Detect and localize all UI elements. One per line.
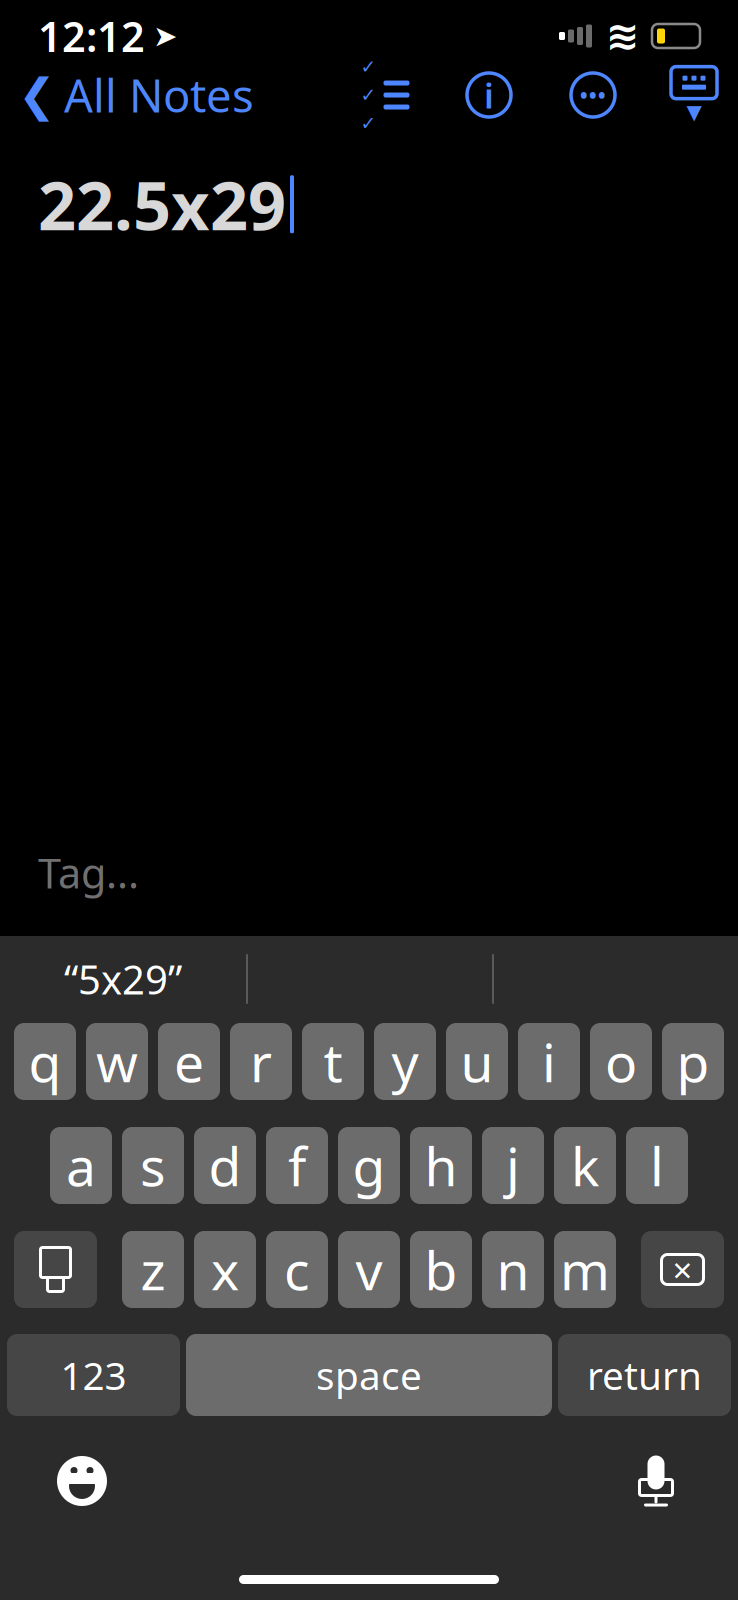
staticText: ••• <box>579 80 606 110</box>
staticText: Tag... <box>38 845 139 900</box>
staticText: s <box>140 1130 166 1201</box>
staticText: m <box>560 1234 610 1305</box>
staticText: b <box>424 1234 457 1305</box>
staticText: 12:12 <box>38 9 145 63</box>
button[interactable]: t <box>302 1023 364 1100</box>
button[interactable]: r <box>230 1023 292 1100</box>
button[interactable]: Info <box>464 70 514 120</box>
staticText: ❮ <box>18 69 56 121</box>
button[interactable]: “5x29” <box>0 936 246 1022</box>
button[interactable]: j <box>482 1127 544 1204</box>
staticText: d <box>208 1130 241 1201</box>
staticText: space <box>316 1349 422 1401</box>
staticText: w <box>96 1026 138 1097</box>
button[interactable]: Emoji <box>44 1443 120 1519</box>
button[interactable]: Checklist <box>360 73 410 117</box>
staticText: “5x29” <box>64 952 182 1005</box>
button[interactable]: Tag... <box>38 839 139 906</box>
staticText: ➤ <box>153 19 178 53</box>
staticText: q <box>28 1026 61 1097</box>
button[interactable]: n <box>482 1231 544 1308</box>
button[interactable]: l <box>626 1127 688 1204</box>
staticText: ≋ <box>606 13 640 59</box>
staticText: ✓ <box>360 113 376 134</box>
staticText: 22.5x29 <box>38 160 286 248</box>
staticText: x <box>211 1234 239 1305</box>
button[interactable]: c <box>266 1231 328 1308</box>
staticText: f <box>288 1130 306 1201</box>
button[interactable]: z <box>122 1231 184 1308</box>
button[interactable]: o <box>590 1023 652 1100</box>
button[interactable]: return <box>558 1334 731 1416</box>
staticText: j <box>506 1130 520 1201</box>
staticText: g <box>352 1130 385 1201</box>
button[interactable]: u <box>446 1023 508 1100</box>
staticText: ✓ <box>360 56 376 77</box>
button[interactable]: h <box>410 1127 472 1204</box>
button[interactable]: Shift <box>14 1231 97 1308</box>
staticText: n <box>496 1234 529 1305</box>
button[interactable]: m <box>554 1231 616 1308</box>
button[interactable]: x <box>194 1231 256 1308</box>
staticText: 123 <box>60 1349 126 1401</box>
button[interactable]: b <box>410 1231 472 1308</box>
staticText: k <box>571 1130 599 1201</box>
staticText: ✓ <box>360 84 376 106</box>
staticText: v <box>355 1234 382 1305</box>
button[interactable]: f <box>266 1127 328 1204</box>
button[interactable]: a <box>50 1127 112 1204</box>
button[interactable]: Hide Keyboard <box>668 69 720 121</box>
button[interactable]: 123 <box>7 1334 180 1416</box>
button[interactable]: d <box>194 1127 256 1204</box>
button[interactable]: i <box>518 1023 580 1100</box>
staticText: t <box>323 1026 342 1097</box>
button[interactable]: k <box>554 1127 616 1204</box>
button[interactable]: w <box>86 1023 148 1100</box>
staticText: z <box>140 1234 165 1305</box>
button[interactable]: y <box>374 1023 436 1100</box>
staticText: ▼ <box>686 101 701 123</box>
staticText: y <box>391 1026 418 1097</box>
staticText: All Notes <box>64 65 254 125</box>
button[interactable]: p <box>662 1023 724 1100</box>
button[interactable]: Delete <box>641 1231 724 1308</box>
staticText: return <box>587 1349 702 1401</box>
button[interactable]: v <box>338 1231 400 1308</box>
staticText: e <box>174 1026 204 1097</box>
staticText: p <box>676 1026 709 1097</box>
button[interactable]: Dictate <box>618 1443 694 1519</box>
button[interactable]: s <box>122 1127 184 1204</box>
button[interactable]: e <box>158 1023 220 1100</box>
button[interactable]: ❮ <box>0 59 254 131</box>
staticText: u <box>460 1026 493 1097</box>
staticText: l <box>650 1130 664 1201</box>
staticText: o <box>605 1026 637 1097</box>
staticText: c <box>284 1234 310 1305</box>
staticText: i <box>542 1026 556 1097</box>
staticText: h <box>424 1130 457 1201</box>
button[interactable]: q <box>14 1023 76 1100</box>
button[interactable]: space <box>186 1334 552 1416</box>
button[interactable]: More <box>568 70 618 120</box>
staticText: × <box>672 1246 692 1292</box>
button[interactable]: g <box>338 1127 400 1204</box>
staticText: a <box>66 1130 96 1201</box>
staticText: i <box>484 72 494 118</box>
staticText: r <box>250 1026 272 1097</box>
